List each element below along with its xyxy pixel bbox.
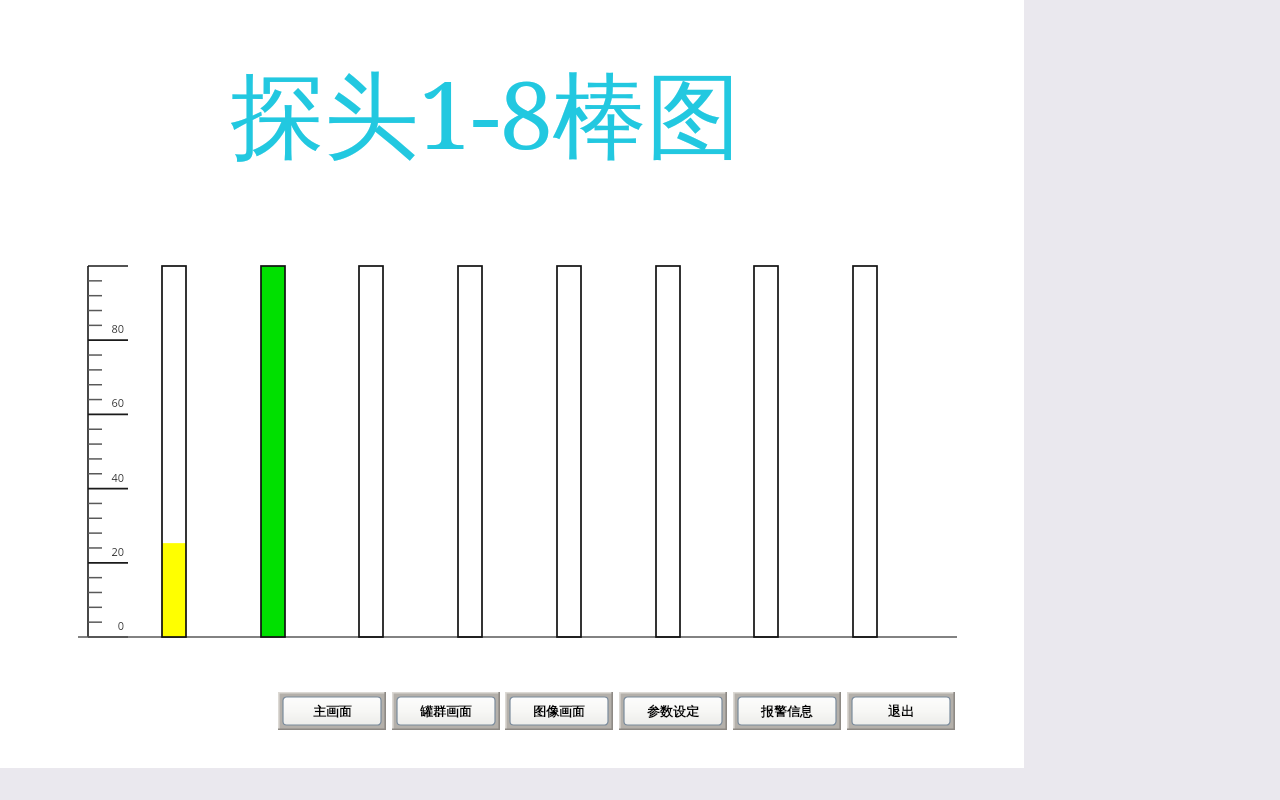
staticText: 0 bbox=[117, 618, 124, 633]
staticText: 罐群画面 bbox=[420, 703, 472, 719]
staticText: 退出 bbox=[888, 703, 914, 719]
button[interactable]: 图像画面 bbox=[505, 692, 613, 730]
button[interactable]: 退出 bbox=[847, 692, 955, 730]
button[interactable]: 罐群画面 bbox=[392, 692, 500, 730]
button[interactable]: 报警信息 bbox=[733, 692, 841, 730]
staticText: 图像画面 bbox=[533, 703, 585, 719]
staticText: 80 bbox=[111, 321, 124, 336]
staticText: 报警信息 bbox=[761, 703, 813, 719]
staticText: 20 bbox=[111, 544, 124, 559]
button[interactable]: 主画面 bbox=[278, 692, 386, 730]
staticText: 主画面 bbox=[313, 703, 352, 719]
staticText: 60 bbox=[111, 395, 124, 410]
button[interactable]: 参数设定 bbox=[619, 692, 727, 730]
staticText: 探头1-8棒图 bbox=[230, 49, 741, 177]
staticText: 40 bbox=[111, 470, 124, 485]
staticText: 参数设定 bbox=[647, 703, 699, 719]
